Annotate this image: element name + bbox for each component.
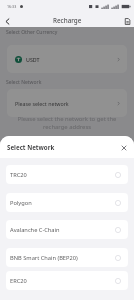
button[interactable]: Please select network (7, 89, 127, 117)
button[interactable]: BNB Smart Chain (BEP20) (6, 248, 128, 267)
staticText: Select Network (6, 79, 42, 86)
staticText: Select Network (7, 143, 55, 151)
button[interactable]: TRC20 (6, 165, 128, 184)
staticText: Polygon (10, 199, 32, 207)
staticText: ERC20 (10, 277, 27, 285)
staticText: Recharge (53, 16, 82, 25)
button[interactable]: Back (1, 15, 13, 27)
staticText: Avalanche C-Chain (10, 226, 60, 234)
button[interactable]: Order records (122, 16, 133, 27)
button[interactable]: ERC20 (6, 271, 128, 290)
staticText: Please select network (15, 100, 69, 107)
button[interactable]: Avalanche C-Chain (6, 220, 128, 239)
button[interactable]: USDT (7, 45, 127, 73)
staticText: USDT (26, 56, 40, 63)
staticText: BNB Smart Chain (BEP20) (10, 254, 78, 262)
button[interactable]: Close (117, 141, 130, 154)
staticText: 16:33 (7, 4, 17, 9)
staticText: Please select the network to get the rec… (6, 115, 128, 131)
staticText: TRC20 (10, 171, 27, 179)
button[interactable]: Polygon (6, 193, 128, 212)
staticText: Select Other Currency (6, 29, 58, 36)
